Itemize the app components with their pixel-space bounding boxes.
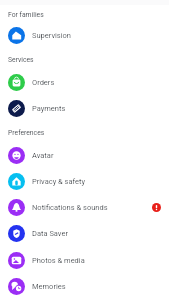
button[interactable]: Photos & media bbox=[0, 247, 169, 273]
staticText: Memories bbox=[32, 282, 66, 291]
button[interactable]: Data Saver bbox=[0, 220, 169, 246]
staticText: Preferences bbox=[8, 129, 45, 137]
staticText: For families bbox=[8, 11, 44, 19]
button[interactable]: Supervision bbox=[0, 22, 169, 48]
staticText: Photos & media bbox=[32, 256, 85, 265]
other: Alert bbox=[152, 203, 161, 212]
staticText: Services bbox=[8, 56, 34, 64]
button[interactable]: Privacy & safety bbox=[0, 168, 169, 194]
staticText: Data Saver bbox=[32, 229, 68, 238]
staticText: Supervision bbox=[32, 31, 71, 40]
button[interactable]: Payments bbox=[0, 95, 169, 121]
staticText: Payments bbox=[32, 104, 66, 113]
staticText: Orders bbox=[32, 78, 55, 87]
button[interactable]: Notifications & sounds bbox=[0, 194, 169, 220]
staticText: Notifications & sounds bbox=[32, 203, 108, 212]
staticText: Privacy & safety bbox=[32, 177, 86, 186]
button[interactable]: Memories bbox=[0, 273, 169, 299]
button[interactable]: Orders bbox=[0, 69, 169, 95]
staticText: Avatar bbox=[32, 151, 54, 160]
button[interactable]: Avatar bbox=[0, 142, 169, 168]
